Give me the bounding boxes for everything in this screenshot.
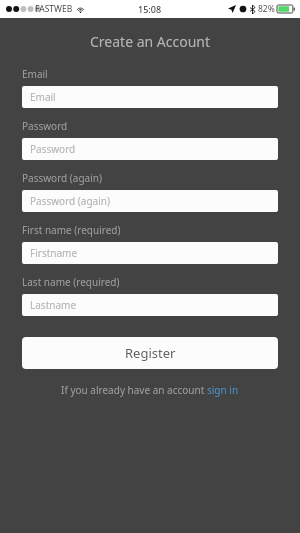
other: Alarm: [239, 5, 247, 13]
staticText: 82%: [258, 3, 275, 15]
staticText: If you already have an account: [61, 383, 207, 397]
staticText: Firstname: [30, 246, 78, 260]
button[interactable]: Password: [22, 138, 278, 160]
button[interactable]: sign in: [207, 383, 239, 397]
staticText: FASTWEB: [35, 3, 73, 15]
staticText: Password (again): [30, 194, 110, 208]
staticText: Lastname: [30, 298, 77, 312]
other: Bluetooth: [250, 5, 255, 14]
button[interactable]: Register: [22, 337, 278, 369]
button[interactable]: Password (again): [22, 190, 278, 212]
staticText: 15:08: [138, 3, 162, 15]
staticText: First name (required): [22, 223, 121, 237]
staticText: sign in: [207, 383, 239, 397]
other: Battery: [277, 5, 295, 13]
other: Location: [228, 5, 236, 13]
button[interactable]: Lastname: [22, 294, 278, 316]
button[interactable]: Firstname: [22, 242, 278, 264]
staticText: Password (again): [22, 171, 102, 185]
staticText: Password: [30, 142, 76, 156]
button[interactable]: Email: [22, 86, 278, 108]
staticText: Password: [22, 119, 68, 133]
staticText: Create an Account: [0, 32, 300, 51]
staticText: Email: [30, 90, 56, 104]
staticText: Register: [125, 344, 176, 362]
staticText: Last name (required): [22, 275, 120, 289]
staticText: Email: [22, 67, 48, 81]
